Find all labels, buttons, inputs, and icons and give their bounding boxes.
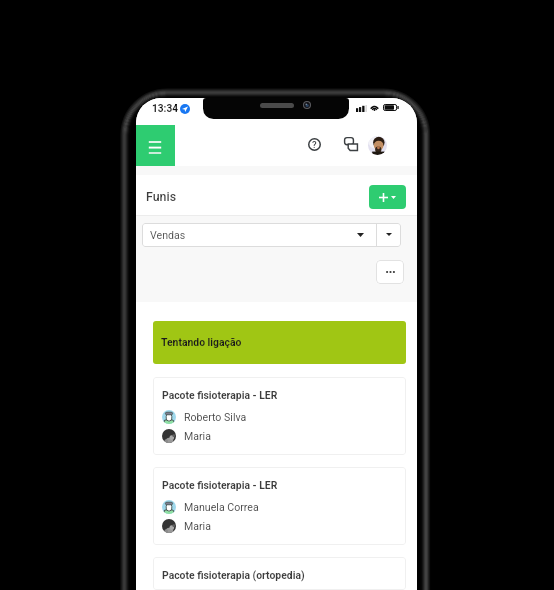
staticText: ?: [312, 139, 317, 150]
staticText: Roberto Silva: [184, 411, 247, 423]
staticText: Pacote fisioterapia - LER: [162, 479, 278, 491]
staticText: Manuela Correa: [184, 501, 259, 513]
staticText: Maria: [184, 430, 211, 442]
button[interactable]: Pacote fisioterapia - LER: [153, 377, 406, 455]
button[interactable]: Vendas: [142, 223, 376, 247]
staticText: 13:34: [152, 103, 179, 115]
staticText: Maria: [184, 520, 211, 532]
staticText: Tentando ligação: [161, 336, 242, 348]
staticText: Vendas: [150, 229, 186, 241]
button[interactable]: Menu: [136, 125, 175, 166]
button[interactable]: Add funnel: [369, 185, 406, 209]
button[interactable]: Pacote fisioterapia (ortopedia): [153, 557, 406, 590]
button[interactable]: More options: [376, 260, 404, 284]
button[interactable]: Chats: [338, 131, 364, 157]
staticText: Pacote fisioterapia - LER: [162, 389, 278, 401]
button[interactable]: Tentando ligação: [153, 321, 406, 364]
button[interactable]: Help: [301, 131, 327, 157]
staticText: Pacote fisioterapia (ortopedia): [162, 569, 305, 581]
button[interactable]: Pacote fisioterapia - LER: [153, 467, 406, 545]
button[interactable]: Profile: [368, 136, 387, 155]
staticText: Funis: [146, 189, 177, 204]
button[interactable]: Funnel options: [377, 223, 401, 247]
